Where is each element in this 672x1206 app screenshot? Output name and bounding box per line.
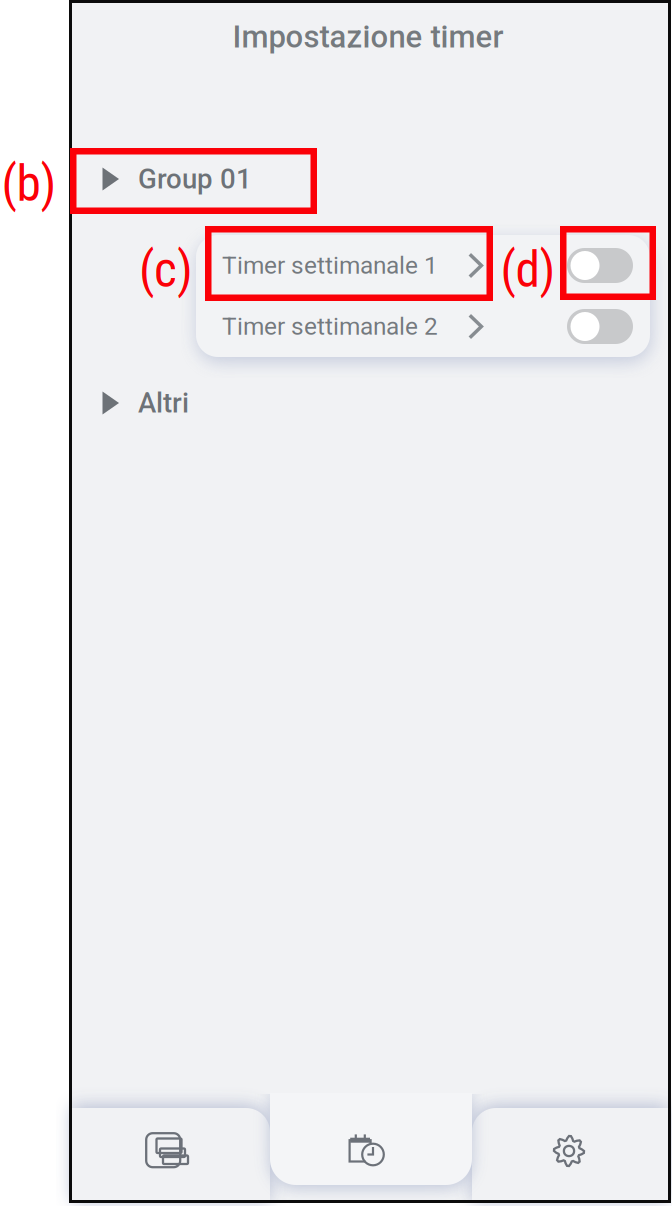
button[interactable]: Group 01 [102, 155, 332, 203]
button[interactable]: Enable Timer settimanale 2 [567, 309, 633, 344]
button[interactable]: Timer settimanale 1 [196, 235, 496, 296]
staticText: Timer settimanale 2 [222, 312, 438, 341]
button[interactable]: Altri [102, 379, 332, 427]
button[interactable]: Settings [551, 1133, 587, 1169]
staticText: (c) [139, 241, 193, 299]
button[interactable]: Enable Timer settimanale 1 [567, 248, 633, 283]
staticText: Impostazione timer [232, 19, 503, 55]
button[interactable]: Timer settimanale 2 [196, 296, 496, 357]
button[interactable]: Timer schedule [347, 1131, 389, 1169]
staticText: (b) [1, 155, 56, 213]
staticText: Group 01 [138, 163, 252, 195]
staticText: (d) [500, 241, 555, 299]
button[interactable]: Devices [145, 1132, 189, 1170]
staticText: Timer settimanale 1 [222, 251, 438, 280]
staticText: Altri [138, 387, 189, 419]
